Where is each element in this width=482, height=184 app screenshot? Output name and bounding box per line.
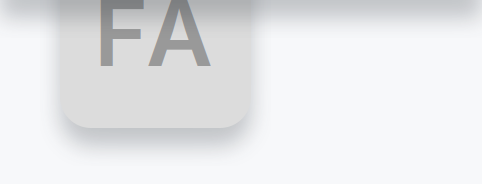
staticText: FA bbox=[94, 0, 213, 88]
